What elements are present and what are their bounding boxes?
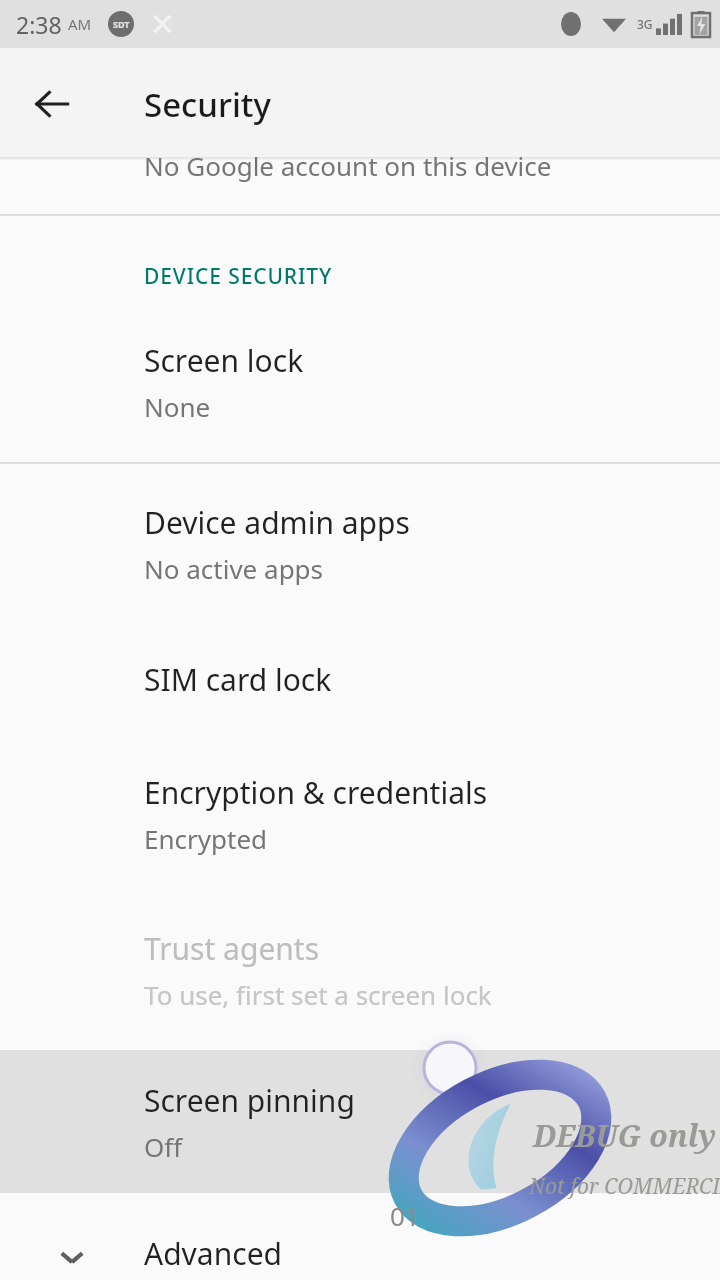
staticText: 01 bbox=[390, 1198, 420, 1233]
staticText: DEVICE SECURITY bbox=[144, 262, 333, 291]
button[interactable]: Device admin apps bbox=[0, 502, 720, 586]
staticText: Not for COMMERCIAL bbox=[529, 1172, 720, 1201]
staticText: SIM card lock bbox=[144, 659, 332, 700]
staticText: SDT bbox=[113, 18, 130, 30]
button[interactable]: SIM card lock bbox=[0, 659, 720, 700]
button[interactable]: Back bbox=[24, 76, 80, 132]
button[interactable]: Encryption & credentials bbox=[0, 772, 720, 856]
staticText: AM bbox=[68, 14, 92, 34]
staticText: 3G bbox=[637, 16, 653, 32]
staticText: Device admin apps bbox=[144, 502, 410, 543]
staticText: Encrypted bbox=[144, 821, 268, 856]
staticText: 2:38 bbox=[16, 9, 62, 40]
button[interactable]: Advanced bbox=[0, 1233, 720, 1280]
staticText: Advanced bbox=[144, 1233, 282, 1274]
staticText: Trust agents bbox=[144, 928, 320, 969]
button[interactable]: Screen pinning bbox=[0, 1050, 720, 1193]
staticText: No active apps bbox=[144, 551, 324, 586]
staticText: To use, first set a screen lock bbox=[144, 977, 492, 1012]
staticText: Off bbox=[144, 1129, 183, 1164]
staticText: None bbox=[144, 389, 211, 424]
staticText: DEBUG only bbox=[533, 1115, 717, 1156]
staticText: Security bbox=[144, 82, 271, 127]
staticText: No Google account on this device bbox=[144, 148, 552, 183]
staticText: Encryption & credentials bbox=[144, 772, 488, 813]
button[interactable]: Screen lock bbox=[0, 340, 720, 424]
staticText: Screen pinning bbox=[144, 1080, 355, 1121]
staticText: Screen lock bbox=[144, 340, 304, 381]
button[interactable]: Trust agents bbox=[0, 928, 720, 1012]
